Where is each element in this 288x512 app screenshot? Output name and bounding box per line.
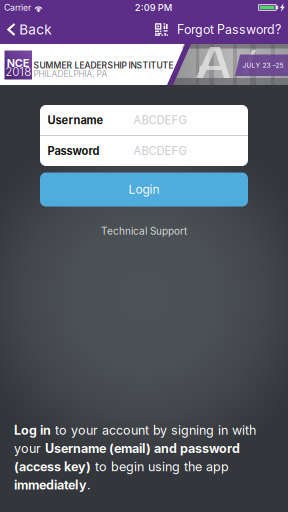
staticText: Username bbox=[48, 113, 104, 127]
staticText: JULY 23 –25 bbox=[242, 61, 283, 69]
staticText: (access key) to begin using the app bbox=[14, 459, 229, 474]
button[interactable]: Back bbox=[0, 15, 57, 44]
staticText: Technical Support bbox=[101, 225, 187, 237]
button[interactable]: Forgot Password? bbox=[173, 15, 288, 44]
button[interactable]: Technical Support bbox=[40, 223, 248, 239]
staticText: Back bbox=[19, 21, 51, 38]
staticText: Carrier bbox=[4, 2, 31, 13]
staticText: Forgot Password? bbox=[177, 22, 281, 37]
staticText: PHILADELPHIA, PA bbox=[33, 69, 107, 79]
staticText: 2018 bbox=[5, 65, 31, 79]
staticText: SUMMER LEADERSHIP INSTITUTE bbox=[33, 60, 173, 71]
button[interactable]: Scan QR code bbox=[150, 15, 173, 44]
staticText: ABCDEFG bbox=[134, 113, 187, 127]
staticText: 2:09 PM bbox=[135, 2, 173, 13]
staticText: Password bbox=[48, 144, 100, 158]
staticText: ABCDEFG bbox=[134, 144, 187, 158]
staticText: NCE bbox=[7, 56, 30, 70]
button[interactable]: Login bbox=[40, 172, 248, 206]
staticText: your Username (email) and password bbox=[14, 441, 240, 456]
staticText: Log in to your account by signing in wit… bbox=[14, 423, 256, 438]
staticText: immediately. bbox=[14, 478, 91, 492]
staticText: Login bbox=[128, 182, 159, 197]
